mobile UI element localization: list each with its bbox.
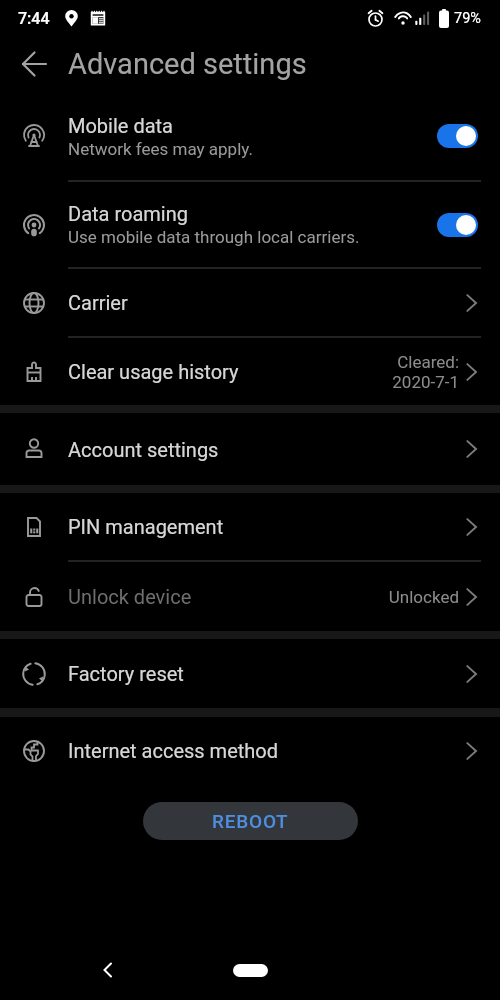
staticText: Clear usage history [68, 360, 239, 383]
staticText: Factory reset [68, 662, 184, 685]
button[interactable] [233, 964, 268, 977]
staticText: REBOOT [212, 810, 289, 832]
staticText: Data roaming [68, 202, 188, 225]
button[interactable] [437, 124, 478, 148]
staticText: Network fees may apply. [68, 139, 253, 159]
staticText: Use mobile data through local carriers. [68, 227, 360, 247]
button[interactable]: Unlock device [0, 562, 500, 631]
button[interactable]: Account settings [0, 413, 500, 485]
staticText: Account settings [68, 438, 219, 461]
button[interactable]: Mobile data [0, 92, 500, 180]
button[interactable]: Internet access method [0, 717, 500, 784]
staticText: Unlock device [68, 585, 192, 608]
button[interactable]: Factory reset [0, 639, 500, 708]
button[interactable] [100, 962, 116, 978]
staticText: Internet access method [68, 739, 278, 762]
staticText: Carrier [68, 291, 128, 314]
button[interactable] [23, 52, 47, 76]
staticText: 7:44 [18, 9, 50, 28]
button[interactable] [437, 213, 478, 237]
button[interactable]: Carrier [0, 269, 500, 336]
button[interactable]: PIN management [0, 493, 500, 560]
staticText: 2020-7-1 [392, 372, 459, 392]
staticText: Advanced settings [68, 47, 307, 81]
staticText: Mobile data [68, 114, 173, 137]
staticText: PIN management [68, 515, 224, 538]
button[interactable]: Clear usage history [0, 338, 500, 405]
button[interactable]: REBOOT [143, 802, 358, 840]
staticText: 79% [454, 10, 481, 27]
staticText: Cleared: [397, 352, 459, 372]
button[interactable]: Data roaming [0, 182, 500, 267]
staticText: Unlocked [388, 587, 459, 607]
